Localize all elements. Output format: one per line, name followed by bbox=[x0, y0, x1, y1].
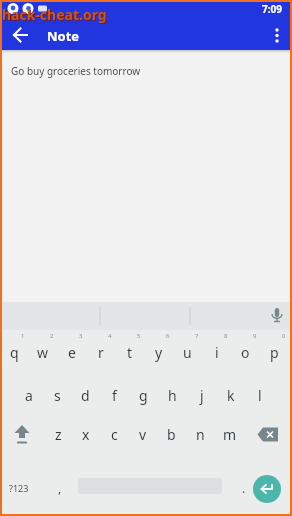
staticText: q bbox=[10, 343, 19, 362]
staticText: e bbox=[68, 343, 76, 362]
button[interactable]: , bbox=[44, 466, 75, 510]
button[interactable]: q bbox=[0, 334, 28, 370]
staticText: f bbox=[112, 386, 117, 405]
button[interactable]: d bbox=[71, 376, 100, 414]
staticText: 4 bbox=[108, 332, 112, 340]
staticText: c bbox=[111, 425, 118, 444]
button[interactable]: k bbox=[216, 376, 245, 414]
button[interactable]: t bbox=[115, 334, 144, 370]
button[interactable]: s bbox=[43, 376, 71, 414]
button[interactable]: p bbox=[260, 334, 289, 370]
button[interactable]: j bbox=[187, 376, 216, 414]
button[interactable]: y bbox=[144, 334, 173, 370]
staticText: hack-cheat.org bbox=[3, 6, 108, 25]
staticText: 6 bbox=[166, 332, 170, 340]
button[interactable]: i bbox=[202, 334, 231, 370]
button[interactable]: a bbox=[15, 376, 43, 414]
staticText: 3 bbox=[79, 332, 83, 340]
staticText: s bbox=[54, 386, 61, 405]
button[interactable] bbox=[263, 21, 291, 49]
staticText: x bbox=[82, 425, 90, 444]
staticText: l bbox=[258, 386, 262, 405]
staticText: t bbox=[127, 343, 133, 362]
staticText: 2 bbox=[50, 332, 54, 340]
staticText: 5 bbox=[137, 332, 141, 340]
button[interactable]: o bbox=[231, 334, 260, 370]
staticText: 8 bbox=[224, 332, 228, 340]
staticText: 1 bbox=[21, 332, 25, 340]
staticText: 9 bbox=[253, 332, 257, 340]
button[interactable]: w bbox=[28, 334, 57, 370]
staticText: , bbox=[58, 480, 62, 496]
button[interactable]: l bbox=[245, 376, 274, 414]
button[interactable]: f bbox=[100, 376, 129, 414]
staticText: r bbox=[98, 343, 104, 362]
button[interactable]: ?123 bbox=[0, 466, 38, 510]
button[interactable]: c bbox=[100, 414, 128, 454]
staticText: w bbox=[37, 343, 49, 362]
staticText: h bbox=[168, 386, 177, 405]
staticText: 7 bbox=[195, 332, 199, 340]
staticText: b bbox=[167, 425, 176, 444]
button[interactable]: . bbox=[230, 466, 258, 510]
staticText: 7:09 bbox=[262, 2, 282, 16]
staticText: d bbox=[81, 386, 90, 405]
staticText: v bbox=[139, 425, 147, 444]
button[interactable]: x bbox=[72, 414, 100, 454]
staticText: 0 bbox=[282, 332, 286, 340]
button[interactable]: r bbox=[86, 334, 115, 370]
button[interactable]: g bbox=[129, 376, 158, 414]
staticText: a bbox=[25, 386, 33, 405]
staticText: m bbox=[223, 425, 237, 444]
staticText: Go buy groceries tomorrow bbox=[11, 64, 141, 78]
button[interactable] bbox=[262, 302, 292, 330]
staticText: j bbox=[200, 386, 204, 405]
button[interactable]: h bbox=[158, 376, 187, 414]
staticText: y bbox=[155, 343, 163, 362]
button[interactable]: e bbox=[57, 334, 86, 370]
button[interactable] bbox=[0, 414, 44, 454]
button[interactable]: u bbox=[173, 334, 202, 370]
button[interactable]: b bbox=[157, 414, 186, 454]
staticText: g bbox=[139, 386, 148, 405]
staticText: z bbox=[55, 425, 62, 444]
staticText: k bbox=[227, 386, 235, 405]
staticText: u bbox=[183, 343, 192, 362]
button[interactable]: v bbox=[128, 414, 157, 454]
button[interactable]: n bbox=[186, 414, 215, 454]
button[interactable]: z bbox=[44, 414, 72, 454]
staticText: . bbox=[242, 480, 246, 496]
staticText: Note bbox=[47, 27, 80, 45]
staticText: ?123 bbox=[9, 482, 29, 494]
button[interactable]: m bbox=[215, 414, 244, 454]
staticText: hack-cheat.org bbox=[2, 5, 107, 24]
staticText: o bbox=[241, 343, 250, 362]
staticText: i bbox=[215, 343, 219, 362]
button[interactable] bbox=[244, 414, 292, 454]
staticText: n bbox=[196, 425, 205, 444]
button[interactable] bbox=[6, 21, 34, 49]
staticText: p bbox=[270, 343, 279, 362]
button[interactable] bbox=[253, 475, 281, 503]
